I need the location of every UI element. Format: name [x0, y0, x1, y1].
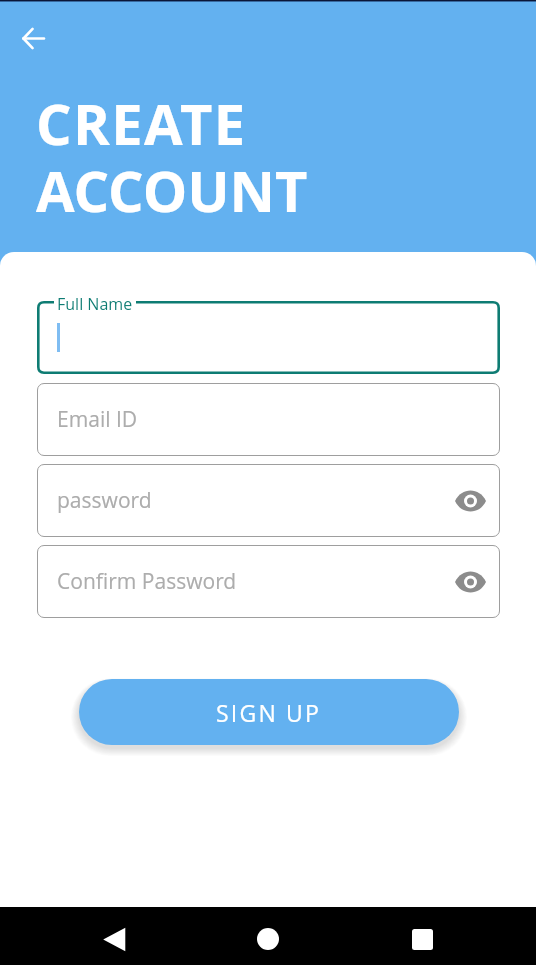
staticText: Email ID [57, 405, 138, 434]
staticText: ACCOUNT [36, 152, 308, 228]
button[interactable]: Back [89, 913, 141, 965]
button[interactable]: Email ID [37, 383, 500, 456]
staticText: CREATE [36, 85, 247, 161]
button[interactable]: SIGN UP [79, 679, 459, 745]
button[interactable]: Confirm Password [37, 545, 500, 618]
button[interactable]: Back [11, 16, 55, 60]
button[interactable]: Recent apps [396, 913, 448, 965]
staticText: password [57, 486, 152, 515]
staticText: Confirm Password [57, 567, 237, 596]
button[interactable]: Home [242, 913, 294, 965]
button[interactable]: password [37, 464, 500, 537]
staticText: Full Name [57, 293, 133, 315]
button[interactable]: Toggle password visibility [450, 562, 490, 602]
button[interactable]: Toggle password visibility [450, 481, 490, 521]
button[interactable] [37, 301, 500, 374]
staticText: SIGN UP [216, 697, 322, 728]
